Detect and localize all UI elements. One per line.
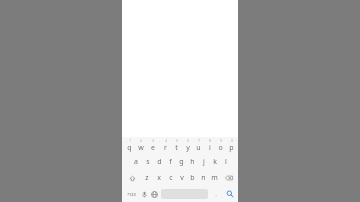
button[interactable]: 6 xyxy=(182,137,193,154)
button[interactable]: ?123 xyxy=(123,186,139,202)
button[interactable]: 2 xyxy=(135,137,147,154)
button[interactable]: k xyxy=(209,154,220,170)
button[interactable]: j xyxy=(198,154,209,170)
staticText: ?123 xyxy=(127,192,136,197)
button[interactable]: 5 xyxy=(171,137,182,154)
staticText: d xyxy=(157,157,162,167)
staticText: 1 xyxy=(129,139,131,143)
staticText: 6 xyxy=(187,139,189,143)
button[interactable]: 1 xyxy=(123,137,135,154)
button[interactable]: g xyxy=(176,154,187,170)
staticText: 5 xyxy=(176,139,178,143)
staticText: 3 xyxy=(152,139,154,143)
button[interactable]: l xyxy=(220,154,231,170)
staticText: g xyxy=(179,157,184,167)
staticText: 0 xyxy=(231,139,233,143)
button[interactable]: Backspace xyxy=(220,170,237,186)
button[interactable]: m xyxy=(209,170,220,186)
button[interactable]: d xyxy=(154,154,165,170)
staticText: o xyxy=(218,143,223,153)
button[interactable]: 0 xyxy=(226,137,237,154)
button[interactable]: v xyxy=(176,170,187,186)
button[interactable]: z xyxy=(141,170,153,186)
button[interactable]: s xyxy=(142,154,154,170)
staticText: r xyxy=(164,143,167,153)
staticText: 4 xyxy=(165,139,167,143)
staticText: p xyxy=(229,143,234,153)
button[interactable]: c xyxy=(165,170,176,186)
staticText: k xyxy=(213,157,217,167)
staticText: e xyxy=(151,143,155,153)
staticText: h xyxy=(190,157,195,167)
staticText: x xyxy=(157,173,161,183)
staticText: 9 xyxy=(220,139,222,143)
staticText: w xyxy=(138,143,144,153)
button[interactable]: h xyxy=(187,154,198,170)
staticText: n xyxy=(201,173,206,183)
staticText: t xyxy=(175,143,178,153)
staticText: i xyxy=(209,143,211,153)
button[interactable]: n xyxy=(198,170,209,186)
staticText: c xyxy=(169,173,173,183)
button[interactable]: 4 xyxy=(159,137,171,154)
button[interactable]: Change language xyxy=(149,186,160,202)
staticText: s xyxy=(146,157,150,167)
button[interactable]: 9 xyxy=(215,137,226,154)
button[interactable]: x xyxy=(153,170,165,186)
staticText: 8 xyxy=(209,139,211,143)
staticText: m xyxy=(211,173,218,183)
staticText: a xyxy=(134,157,138,167)
staticText: . xyxy=(215,190,217,198)
button[interactable]: a xyxy=(130,154,142,170)
staticText: v xyxy=(180,173,184,183)
button[interactable]: f xyxy=(165,154,176,170)
button[interactable]: 3 xyxy=(147,137,159,154)
staticText: 2 xyxy=(140,139,142,143)
staticText: z xyxy=(145,173,149,183)
staticText: q xyxy=(127,143,132,153)
staticText: b xyxy=(190,173,195,183)
staticText: 7 xyxy=(198,139,200,143)
button[interactable]: Voice input xyxy=(139,186,149,202)
button[interactable]: Shift xyxy=(123,170,141,186)
button[interactable]: 7 xyxy=(193,137,204,154)
staticText: y xyxy=(186,143,190,153)
staticText: f xyxy=(169,157,172,167)
staticText: u xyxy=(196,143,201,153)
staticText: j xyxy=(203,157,205,167)
button[interactable]: b xyxy=(187,170,198,186)
button[interactable]: 8 xyxy=(204,137,215,154)
button[interactable]: Search xyxy=(222,186,237,202)
staticText: l xyxy=(225,157,227,167)
